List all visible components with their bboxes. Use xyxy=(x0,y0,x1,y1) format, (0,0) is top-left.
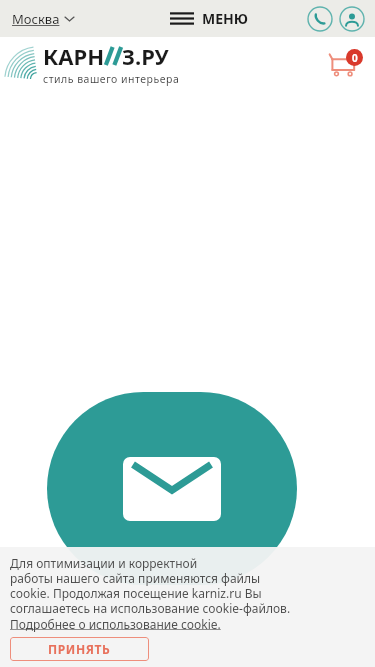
staticText: КАРН xyxy=(43,41,105,71)
staticText: МЕНЮ xyxy=(202,9,249,28)
button[interactable]: Cart, 0 items xyxy=(329,49,363,79)
button[interactable]: Подробнее о использование cookie. xyxy=(10,616,221,632)
button[interactable]: ПРИНЯТЬ xyxy=(10,637,149,661)
button[interactable]: Call xyxy=(307,6,333,32)
staticText: Для оптимизации и корректной работы наше… xyxy=(10,555,291,616)
staticText: З.РУ xyxy=(122,41,169,71)
staticText: 0 xyxy=(352,51,358,65)
button[interactable]: Москва xyxy=(10,6,76,32)
staticText: ПРИНЯТЬ xyxy=(48,641,111,657)
staticText: Москва xyxy=(12,10,60,28)
staticText: стиль вашего интерьера xyxy=(43,72,180,86)
button[interactable]: Karniz.ru home xyxy=(8,49,40,79)
button[interactable]: КАРН xyxy=(43,41,180,86)
button[interactable]: Contact us by email xyxy=(47,392,297,585)
button[interactable]: Account xyxy=(339,6,365,32)
button[interactable]: МЕНЮ xyxy=(168,5,251,32)
